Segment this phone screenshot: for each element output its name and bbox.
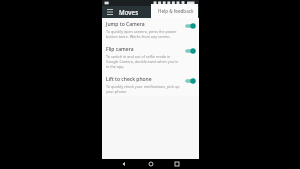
button[interactable]: Jump to Camera <box>102 18 199 41</box>
button[interactable]: Toggle setting on <box>184 77 196 85</box>
button[interactable]: Help & feedback <box>151 4 198 18</box>
button[interactable]: Toggle setting on <box>184 22 196 30</box>
staticText: To quickly open camera, press the power … <box>106 29 181 39</box>
button[interactable]: Flip camera <box>102 41 199 71</box>
staticText: To quickly check your notifications, pic… <box>106 84 181 94</box>
staticText: Help & feedback <box>158 8 194 14</box>
staticText: Flip camera <box>106 46 134 53</box>
button[interactable]: Recent apps <box>172 159 182 169</box>
staticText: Lift to check phone <box>106 76 152 83</box>
staticText: Jump to Camera <box>106 21 145 28</box>
button[interactable]: Back <box>119 159 129 169</box>
button[interactable]: Toggle setting on <box>184 47 196 55</box>
staticText: Moves <box>119 8 139 16</box>
button[interactable]: Home <box>146 159 156 169</box>
button[interactable]: Lift to check phone <box>102 71 199 96</box>
staticText: To switch in and out of selfie mode in G… <box>106 54 181 69</box>
button[interactable]: Open navigation drawer <box>105 7 115 17</box>
